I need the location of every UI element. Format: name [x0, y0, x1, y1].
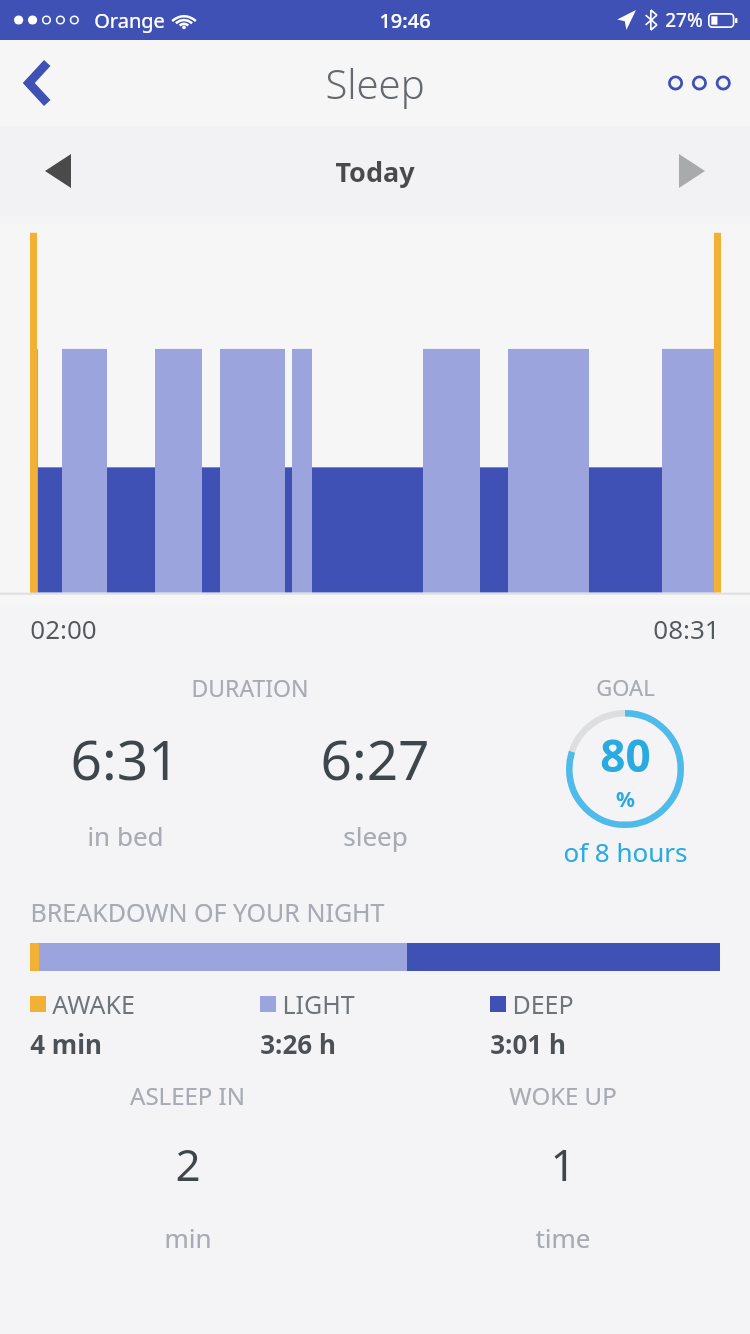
staticText: sleep — [343, 818, 408, 853]
staticText: 19:46 — [379, 7, 431, 34]
staticText: 4 min — [30, 1026, 102, 1061]
staticText: 1 — [550, 1134, 576, 1194]
staticText: DURATION — [191, 672, 309, 703]
staticText: 2 — [175, 1134, 201, 1194]
staticText: WOKE UP — [509, 1079, 617, 1112]
staticText: Today — [335, 153, 415, 190]
staticText: 6:27 — [320, 721, 430, 796]
staticText: BREAKDOWN OF YOUR NIGHT — [30, 895, 385, 929]
staticText: GOAL — [596, 672, 655, 702]
staticText: 6:31 — [70, 721, 180, 796]
staticText: 80 — [600, 725, 651, 785]
button[interactable]: Previous day — [18, 135, 98, 207]
staticText: in bed — [87, 818, 164, 853]
staticText: ASLEEP IN — [130, 1079, 245, 1112]
staticText: DEEP — [512, 987, 574, 1021]
staticText: 27% — [665, 7, 703, 33]
staticText: 3:01 h — [490, 1026, 566, 1061]
button[interactable]: More options — [656, 51, 742, 115]
staticText: of 8 hours — [563, 834, 688, 869]
button[interactable]: Next day — [652, 135, 732, 207]
staticText: 02:00 — [30, 611, 97, 646]
staticText: Orange — [94, 7, 165, 34]
staticText: AWAKE — [52, 987, 135, 1021]
staticText: min — [164, 1220, 212, 1255]
staticText: 08:31 — [653, 611, 720, 646]
button[interactable]: Back — [6, 51, 70, 115]
staticText: % — [616, 785, 635, 814]
staticText: Sleep — [325, 56, 425, 110]
staticText: LIGHT — [282, 987, 355, 1021]
staticText: time — [535, 1220, 591, 1255]
staticText: 3:26 h — [260, 1026, 336, 1061]
